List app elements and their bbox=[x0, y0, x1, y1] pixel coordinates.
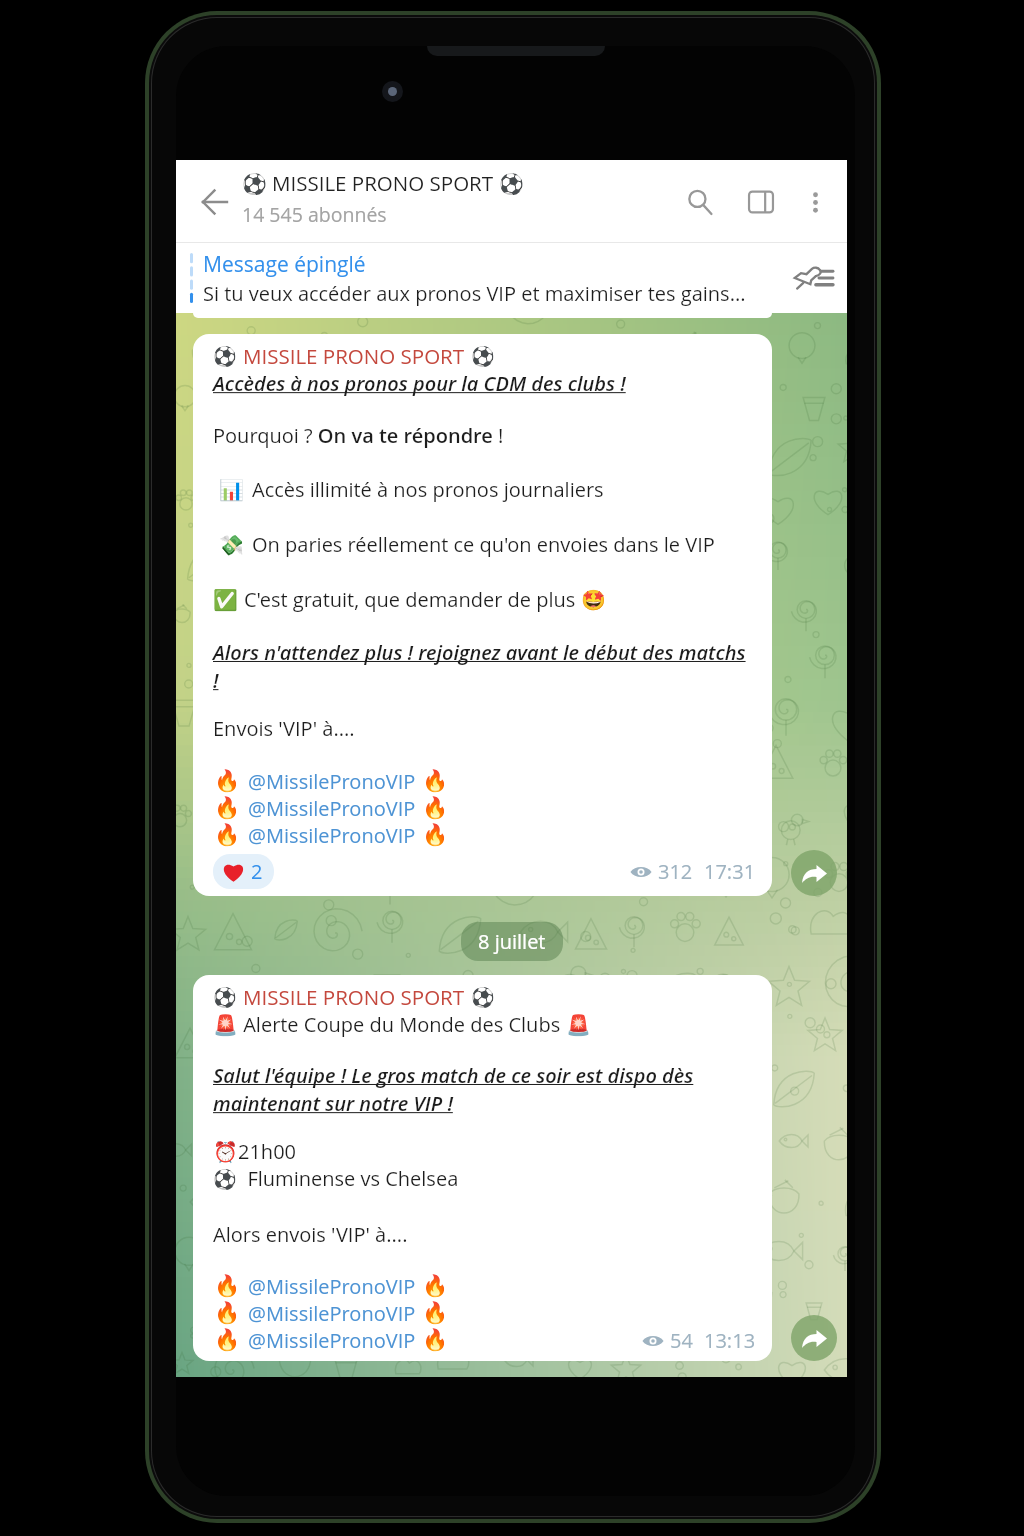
button[interactable]: 8 juillet bbox=[461, 922, 563, 961]
staticText: Alors envois 'VIP' à.... bbox=[213, 1221, 408, 1248]
staticText: Alerte Coupe du Monde des Clubs bbox=[238, 1011, 566, 1038]
staticText: ⚽️ bbox=[213, 1168, 237, 1190]
staticText: 🤩 bbox=[581, 588, 606, 611]
staticText: 🔥 bbox=[422, 1274, 449, 1299]
staticText: 312 bbox=[658, 858, 693, 885]
staticText: 8 juillet bbox=[478, 928, 546, 955]
staticText: 🔥 bbox=[214, 796, 241, 821]
button[interactable]: Back bbox=[189, 177, 239, 227]
staticText: ⚽️ bbox=[242, 172, 267, 195]
staticText: 💸 bbox=[219, 533, 244, 556]
button[interactable]: Search bbox=[669, 171, 731, 233]
staticText: 🔥 bbox=[214, 1301, 241, 1326]
staticText: 54 bbox=[670, 1327, 693, 1354]
staticText: 🔥 bbox=[214, 1328, 241, 1353]
staticText: 🔥 bbox=[422, 769, 449, 794]
staticText: MISSILE PRONO SPORT bbox=[243, 342, 465, 370]
staticText: Envois 'VIP' à.... bbox=[213, 715, 355, 742]
button[interactable]: Side panel bbox=[731, 172, 791, 232]
staticText: MISSILE PRONO SPORT bbox=[272, 169, 494, 197]
staticText: @MissilePronoVIP bbox=[248, 822, 416, 849]
staticText: 🔥 bbox=[214, 1274, 241, 1299]
staticText: 📊 bbox=[219, 478, 244, 501]
staticText: 14 545 abonnés bbox=[242, 201, 387, 228]
staticText: 🔥 bbox=[422, 796, 449, 821]
button[interactable]: Pinned messages list bbox=[790, 255, 836, 301]
staticText: ⚽️ bbox=[213, 345, 237, 367]
staticText: @MissilePronoVIP bbox=[248, 1327, 416, 1354]
staticText: 🔥 bbox=[422, 1328, 449, 1353]
staticText: Accèdes à nos pronos pour la CDM des clu… bbox=[213, 370, 626, 397]
staticText: MISSILE PRONO SPORT bbox=[243, 983, 465, 1011]
staticText: 21h00 bbox=[238, 1138, 297, 1165]
staticText: On paries réellement ce qu'on envoies da… bbox=[252, 531, 715, 558]
staticText: ⚽️ bbox=[471, 986, 495, 1008]
staticText: 🔥 bbox=[214, 823, 241, 848]
staticText: 🔥 bbox=[422, 1301, 449, 1326]
staticText: C'est gratuit, que demander de plus bbox=[244, 586, 581, 613]
button[interactable]: Forward message bbox=[791, 850, 837, 896]
staticText: ✅ bbox=[213, 588, 238, 611]
staticText: @MissilePronoVIP bbox=[248, 1273, 416, 1300]
button[interactable]: 2 bbox=[213, 854, 274, 889]
staticText: Si tu veux accéder aux pronos VIP et max… bbox=[203, 280, 746, 307]
staticText: 🚨 bbox=[566, 1013, 591, 1036]
staticText: Pourquoi ? On va te répondre ! bbox=[213, 422, 504, 449]
button[interactable]: ⚽️ bbox=[193, 334, 772, 896]
staticText: 🚨 bbox=[213, 1013, 238, 1036]
staticText: @MissilePronoVIP bbox=[248, 795, 416, 822]
staticText: Message épinglé bbox=[203, 250, 366, 279]
button[interactable]: Forward message bbox=[791, 1315, 837, 1361]
staticText: ⏰ bbox=[213, 1140, 238, 1163]
staticText: ⚽️ bbox=[499, 172, 524, 195]
staticText: @MissilePronoVIP bbox=[248, 1300, 416, 1327]
staticText: Fluminense vs Chelsea bbox=[237, 1165, 459, 1192]
staticText: Alors n'attendez plus ! rejoignez avant … bbox=[213, 639, 746, 694]
button[interactable]: More options bbox=[791, 178, 839, 226]
staticText: 🔥 bbox=[214, 769, 241, 794]
staticText: Salut l'équipe ! Le gros match de ce soi… bbox=[213, 1062, 694, 1117]
staticText: ⚽️ bbox=[213, 986, 237, 1008]
staticText: 🔥 bbox=[422, 823, 449, 848]
staticText: 17:31 bbox=[704, 858, 756, 885]
staticText: Accès illimité à nos pronos journaliers bbox=[252, 476, 604, 503]
staticText: @MissilePronoVIP bbox=[248, 768, 416, 795]
staticText: ⚽️ bbox=[471, 345, 495, 367]
staticText: 2 bbox=[251, 858, 263, 885]
staticText: 13:13 bbox=[704, 1327, 756, 1354]
button[interactable]: ⚽️ bbox=[193, 975, 772, 1361]
